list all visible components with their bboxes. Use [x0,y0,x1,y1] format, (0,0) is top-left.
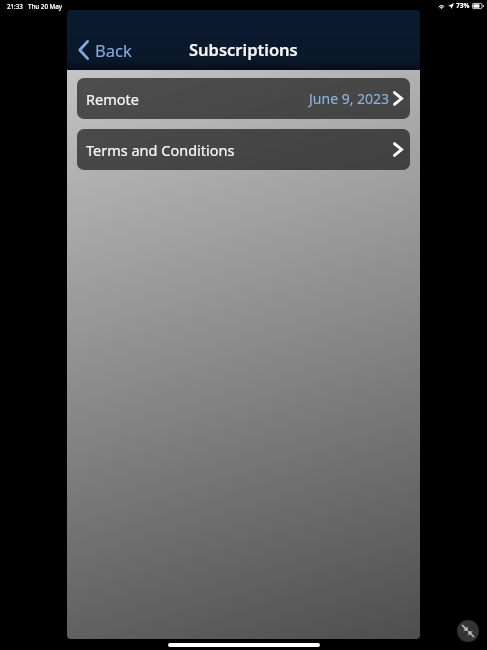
button[interactable]: Collapse window [457,620,479,642]
staticText: June 9, 2023 [309,89,390,108]
staticText: Remote [86,89,139,109]
button[interactable]: Terms and Conditions [77,129,410,170]
staticText: Back [95,39,132,61]
staticText: Thu 20 May [28,2,63,10]
staticText: Subscriptions [189,38,298,60]
staticText: 73% [456,1,470,10]
staticText: 21:33 [7,2,23,10]
button[interactable]: Remote [77,78,410,119]
staticText: Terms and Conditions [86,140,235,160]
button[interactable]: Back [72,36,138,64]
